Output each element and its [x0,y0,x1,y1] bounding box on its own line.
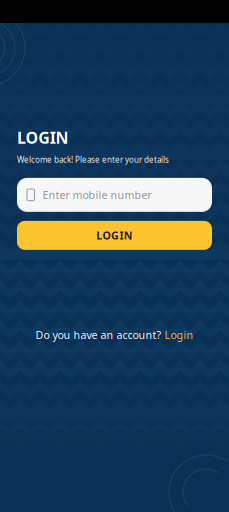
button[interactable]: LOGIN [17,221,212,250]
staticText: Welcome back! Please enter your details [17,154,169,165]
staticText: Login [164,328,193,342]
staticText: Enter mobile number [42,188,151,202]
staticText: LOGIN [96,228,133,242]
button[interactable]: Login [164,328,193,342]
staticText: Do you have an account? [35,328,164,342]
staticText: LOGIN [17,127,68,148]
